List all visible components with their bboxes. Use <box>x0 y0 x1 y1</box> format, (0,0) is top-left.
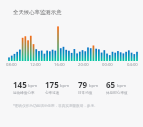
button[interactable]: 175 <box>45 79 70 96</box>
staticText: 20:00 <box>78 62 89 68</box>
staticText: bpm <box>60 83 70 89</box>
button[interactable]: 145 <box>13 79 38 96</box>
button[interactable]: 65 <box>106 79 128 96</box>
staticText: *图表仅作为功能演示使用，非真实测量数据，参考。 <box>13 103 98 108</box>
staticText: 休息时心率值 <box>106 91 128 96</box>
staticText: bpm <box>28 83 38 89</box>
staticText: 65 <box>106 79 116 90</box>
staticText: 00:00 <box>102 62 113 68</box>
staticText: bpm <box>89 83 99 89</box>
staticText: 日常均值 <box>78 91 93 96</box>
button[interactable]: 79 <box>78 79 99 96</box>
staticText: 16:00 <box>54 62 65 68</box>
staticText: 04:00 <box>127 62 138 68</box>
staticText: 175 <box>45 79 59 90</box>
staticText: 12:00 <box>30 62 41 68</box>
staticText: 运动峰值心率 <box>13 91 35 96</box>
staticText: 79 <box>78 79 88 90</box>
staticText: 08:00 <box>6 62 17 68</box>
staticText: 心率过速 <box>45 91 60 96</box>
staticText: bpm <box>117 83 127 89</box>
staticText: 全天候心率监测示意 <box>13 9 62 16</box>
staticText: 145 <box>13 79 27 90</box>
